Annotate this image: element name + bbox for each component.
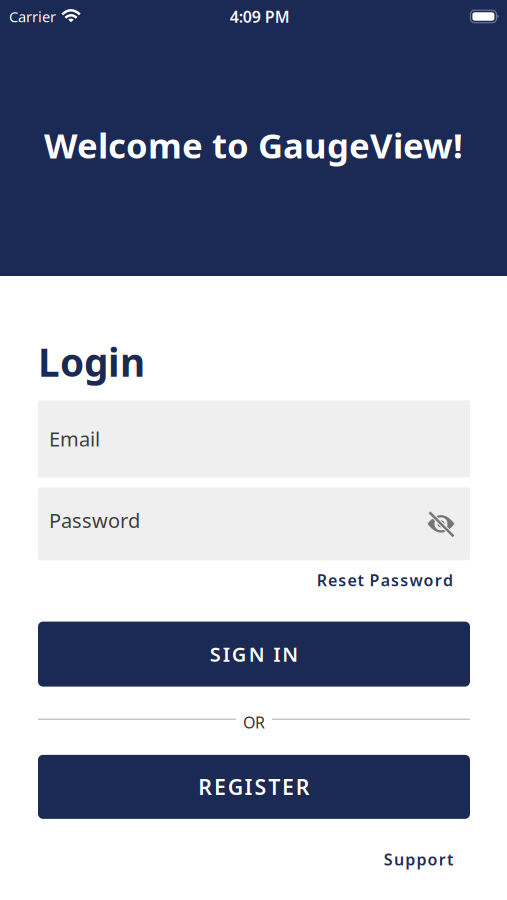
staticText: o	[428, 849, 438, 870]
staticText: N	[282, 641, 298, 667]
staticText: e	[347, 569, 356, 590]
button[interactable]: Password	[38, 487, 470, 560]
staticText: I	[223, 641, 230, 667]
staticText: p	[416, 849, 426, 870]
staticText: s	[400, 569, 408, 590]
staticText: I	[273, 641, 280, 667]
button[interactable]: Register	[38, 755, 470, 819]
staticText: w	[409, 569, 422, 590]
staticText: Carrier	[9, 7, 56, 26]
staticText: E	[282, 773, 294, 801]
staticText: R	[296, 773, 310, 801]
staticText: E	[214, 773, 226, 801]
staticText: s	[338, 569, 346, 590]
staticText: u	[394, 849, 404, 870]
button[interactable]: Email	[38, 400, 470, 477]
staticText: R	[198, 773, 212, 801]
staticText: R	[317, 569, 327, 590]
staticText: G	[228, 773, 243, 801]
staticText: Welcome to GaugeView!	[44, 122, 463, 168]
staticText: G	[232, 641, 247, 667]
staticText: S	[384, 849, 393, 870]
staticText: t	[358, 569, 364, 590]
staticText: S	[210, 641, 221, 667]
button[interactable]: Support	[384, 849, 453, 870]
staticText: t	[447, 849, 453, 870]
staticText: Email	[49, 426, 100, 452]
staticText: o	[424, 569, 434, 590]
staticText: d	[443, 569, 453, 590]
staticText: Password	[49, 507, 140, 534]
staticText: N	[249, 641, 265, 667]
staticText: P	[370, 569, 380, 590]
button[interactable]: Show password	[427, 512, 470, 535]
button[interactable]: Sign In	[38, 622, 470, 687]
staticText: S	[254, 773, 266, 801]
staticText: r	[435, 569, 442, 590]
staticText: T	[268, 773, 280, 801]
staticText: OR	[243, 712, 265, 733]
staticText: Login	[38, 336, 145, 387]
staticText: 4:09 PM	[230, 6, 290, 27]
staticText: a	[381, 569, 390, 590]
staticText: p	[405, 849, 415, 870]
button[interactable]: Reset Password	[317, 569, 453, 590]
staticText: e	[328, 569, 337, 590]
staticText: I	[245, 773, 253, 801]
staticText: s	[391, 569, 399, 590]
staticText: r	[439, 849, 446, 870]
